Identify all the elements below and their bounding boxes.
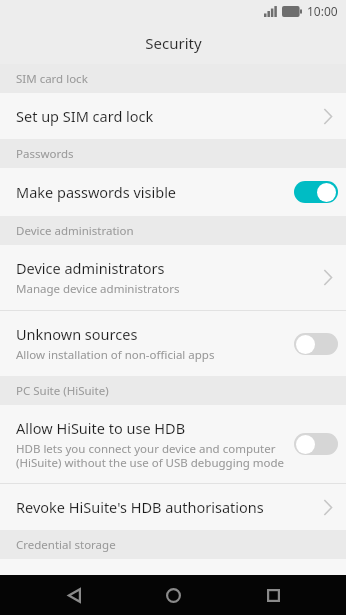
staticText: Device administration <box>16 223 134 239</box>
button[interactable]: Set up SIM card lock <box>0 93 346 139</box>
button[interactable]: Device administrators <box>0 245 346 310</box>
button[interactable]: Home <box>147 575 199 615</box>
staticText: Allow installation of non-official apps <box>16 347 215 363</box>
staticText: HDB lets you connect your device and com… <box>16 441 285 470</box>
staticText: Manage device administrators <box>16 281 180 297</box>
button[interactable]: Toggle off <box>294 433 338 455</box>
button[interactable]: Back <box>48 575 100 615</box>
button[interactable]: Toggle off <box>294 333 338 355</box>
staticText: 10:00 <box>307 3 338 19</box>
staticText: Revoke HiSuite's HDB authorisations <box>16 497 264 517</box>
staticText: PC Suite (HiSuite) <box>16 383 109 399</box>
button[interactable]: Unknown sources <box>0 311 346 376</box>
staticText: Security <box>145 33 202 53</box>
button[interactable]: Toggle on <box>294 181 338 203</box>
button[interactable]: Make passwords visible <box>0 168 346 216</box>
button[interactable]: Allow HiSuite to use HDB <box>0 405 346 483</box>
staticText: Device administrators <box>16 258 165 278</box>
staticText: Unknown sources <box>16 324 138 344</box>
staticText: Credential storage <box>16 537 116 553</box>
staticText: Passwords <box>16 146 74 162</box>
staticText: Allow HiSuite to use HDB <box>16 418 186 438</box>
staticText: Make passwords visible <box>16 182 177 202</box>
staticText: Set up SIM card lock <box>16 106 154 126</box>
button[interactable]: Recents <box>247 575 299 615</box>
staticText: SIM card lock <box>16 71 88 87</box>
button[interactable]: Revoke HiSuite's HDB authorisations <box>0 484 346 530</box>
